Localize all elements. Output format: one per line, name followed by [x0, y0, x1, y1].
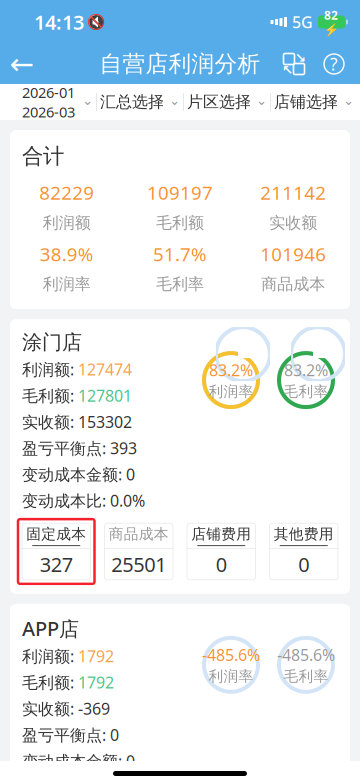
staticText: 0 — [298, 551, 309, 578]
staticText: 毛利额: — [22, 385, 78, 406]
staticText: 0.0% — [110, 490, 145, 511]
staticText: 实收额: — [22, 698, 78, 719]
staticText: ↘ — [295, 50, 306, 65]
staticText: 5G — [292, 11, 313, 33]
staticText: 327 — [40, 551, 73, 578]
staticText: 实收额: — [22, 411, 78, 432]
staticText: 其他费用 — [274, 525, 334, 543]
staticText: 51.7% — [153, 242, 207, 266]
staticText: 店铺费用 — [191, 525, 251, 543]
staticText: 毛利额 — [156, 213, 204, 233]
staticText: 14:13 — [34, 9, 84, 35]
staticText: 利润率 — [208, 667, 253, 685]
staticText: 🔇 — [87, 14, 105, 30]
staticText: 利润率 — [208, 383, 253, 401]
staticText: 0 — [110, 724, 119, 745]
staticText: ⌄ — [169, 93, 180, 108]
staticText: 毛利率 — [156, 274, 204, 294]
staticText: 实收额 — [269, 213, 317, 233]
staticText: 盈亏平衡点: — [22, 437, 110, 459]
staticText: 店铺选择 — [274, 92, 338, 112]
staticText: 合计 — [22, 143, 64, 169]
staticText: 101946 — [260, 242, 326, 266]
staticText: 毛利率 — [283, 383, 328, 401]
staticText: 利润率 — [43, 274, 91, 294]
staticText: ⌄ — [256, 93, 267, 108]
staticText: 变动成本金额: — [22, 464, 126, 485]
button[interactable]: 片区选择 — [184, 84, 270, 120]
staticText: 82229 — [39, 180, 94, 205]
button[interactable]: 其他费用 — [265, 519, 342, 584]
staticText: 38.9% — [40, 242, 94, 266]
staticText: 汇总选择 — [100, 92, 164, 112]
staticText: 1792 — [78, 672, 114, 693]
staticText: 毛利率 — [283, 667, 328, 685]
staticText: ⌄ — [343, 93, 354, 108]
staticText: 83.2% — [209, 359, 253, 381]
staticText: 盈亏平衡点: — [22, 724, 110, 745]
button[interactable]: 返回 — [0, 44, 44, 84]
staticText: 变动成本比: — [22, 490, 110, 511]
staticText: 毛利额: — [22, 672, 78, 693]
staticText: 109197 — [147, 180, 213, 205]
staticText: -485.6% — [277, 644, 335, 665]
staticText: ? — [330, 52, 338, 75]
staticText: 83.2% — [284, 359, 328, 381]
button[interactable]: 店铺选择 — [271, 84, 357, 120]
button[interactable]: 店铺费用 — [183, 519, 259, 584]
staticText: 自营店利润分析 — [99, 50, 260, 78]
button[interactable]: 汇总选择 — [97, 84, 183, 120]
staticText: -369 — [78, 698, 110, 719]
staticText: 片区选择 — [187, 92, 251, 112]
staticText: 82⚡ — [324, 7, 339, 37]
staticText: ⌄ — [82, 93, 93, 108]
staticText: 商品成本 — [261, 274, 325, 294]
staticText: 0 — [216, 551, 227, 578]
staticText: 利润额: — [22, 645, 78, 667]
staticText: 127474 — [78, 359, 132, 380]
staticText: 0 — [126, 464, 135, 485]
staticText: 25501 — [111, 551, 166, 578]
button[interactable]: 对比 — [274, 44, 314, 84]
staticText: 393 — [110, 437, 137, 459]
staticText: 211142 — [260, 180, 326, 205]
staticText: 1792 — [78, 645, 114, 667]
button[interactable]: 商品成本 — [100, 519, 177, 584]
staticText: ← — [9, 47, 34, 81]
button[interactable]: 固定成本 — [18, 519, 94, 584]
staticText: 2026-03 — [22, 102, 75, 121]
staticText: 涂门店 — [22, 330, 82, 355]
button[interactable]: 帮助 — [314, 44, 354, 84]
button[interactable]: 2026-01 — [0, 84, 96, 120]
staticText: 商品成本 — [109, 525, 169, 543]
staticText: 153302 — [78, 411, 132, 432]
staticText: APP店 — [22, 615, 79, 641]
staticText: 0 — [126, 750, 135, 772]
staticText: 固定成本 — [26, 525, 86, 543]
staticText: -485.6% — [202, 644, 260, 665]
staticText: 利润额 — [43, 213, 91, 233]
staticText: 2026-01 — [22, 82, 75, 102]
staticText: ↖ — [282, 62, 293, 77]
staticText: 利润额: — [22, 359, 78, 380]
staticText: 127801 — [78, 385, 132, 406]
staticText: 变动成本金额: — [22, 750, 126, 772]
